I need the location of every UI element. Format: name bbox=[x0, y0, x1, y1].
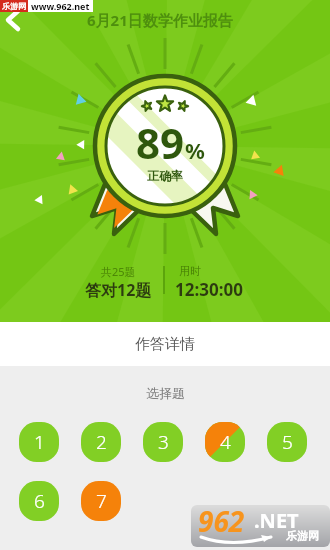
staticText: 共25题 bbox=[101, 264, 136, 279]
button[interactable]: 2 bbox=[81, 422, 121, 462]
staticText: 乐游网 bbox=[2, 1, 26, 11]
staticText: .NET bbox=[254, 507, 299, 534]
staticText: 2 bbox=[96, 429, 107, 455]
button[interactable]: 1 bbox=[19, 422, 59, 462]
staticText: 6 bbox=[34, 488, 45, 514]
staticText: 962 bbox=[198, 505, 245, 540]
staticText: 3 bbox=[158, 429, 169, 455]
staticText: 89 bbox=[136, 114, 185, 171]
staticText: 正确率 bbox=[147, 168, 183, 183]
button[interactable] bbox=[0, 4, 34, 36]
staticText: 7 bbox=[96, 488, 107, 514]
staticText: 1 bbox=[34, 429, 45, 455]
staticText: 作答详情 bbox=[135, 335, 195, 354]
staticText: 用时 bbox=[179, 264, 201, 278]
button[interactable]: 3 bbox=[143, 422, 183, 462]
staticText: 选择题 bbox=[146, 385, 185, 401]
staticText: 5 bbox=[282, 429, 293, 455]
staticText: 乐游网 bbox=[286, 529, 319, 543]
staticText: 答对12题 bbox=[85, 279, 152, 301]
staticText: 6月21日数学作业报告 bbox=[87, 10, 233, 30]
staticText: 4 bbox=[220, 429, 231, 455]
button[interactable]: 4 bbox=[205, 422, 245, 462]
button[interactable]: 6 bbox=[19, 481, 59, 521]
staticText: www.962.net bbox=[31, 0, 90, 12]
button[interactable]: 作答详情 bbox=[0, 322, 330, 366]
staticText: % bbox=[185, 135, 205, 165]
button[interactable]: 7 bbox=[81, 481, 121, 521]
staticText: 12:30:00 bbox=[175, 278, 243, 301]
button[interactable]: 5 bbox=[267, 422, 307, 462]
